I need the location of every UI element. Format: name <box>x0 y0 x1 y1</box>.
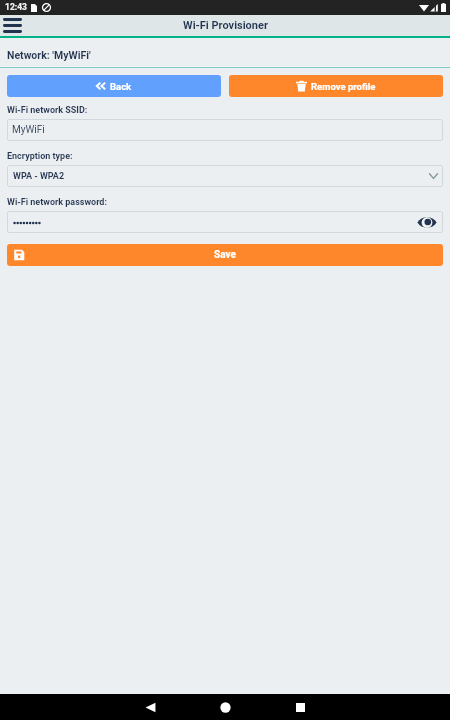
button[interactable]: Recent apps <box>263 694 338 720</box>
staticText: Remove profile <box>311 81 376 92</box>
button[interactable]: Back <box>113 694 188 720</box>
button[interactable]: Back <box>7 75 221 97</box>
button[interactable]: WPA - WPA2 <box>7 165 443 187</box>
staticText: Back <box>110 81 132 92</box>
button[interactable]: Show password <box>416 211 438 233</box>
button[interactable] <box>7 211 443 233</box>
staticText: Wi-Fi network password: <box>7 197 107 208</box>
button[interactable]: Home <box>188 694 263 720</box>
staticText: Wi-Fi Provisioner <box>183 19 268 32</box>
staticText: Save <box>25 249 425 261</box>
staticText: WPA - WPA2 <box>13 171 65 182</box>
staticText: Encryption type: <box>7 151 73 162</box>
button[interactable]: Remove profile <box>229 75 443 97</box>
staticText: Network: 'MyWiFi' <box>7 49 91 61</box>
staticText: Wi-Fi network SSID: <box>7 105 88 116</box>
button[interactable]: MyWiFi <box>7 119 443 141</box>
button[interactable]: Open navigation menu <box>1 16 24 35</box>
staticText: 12:43 <box>5 2 27 12</box>
staticText: MyWiFi <box>12 124 45 136</box>
button[interactable]: Save <box>7 244 443 266</box>
